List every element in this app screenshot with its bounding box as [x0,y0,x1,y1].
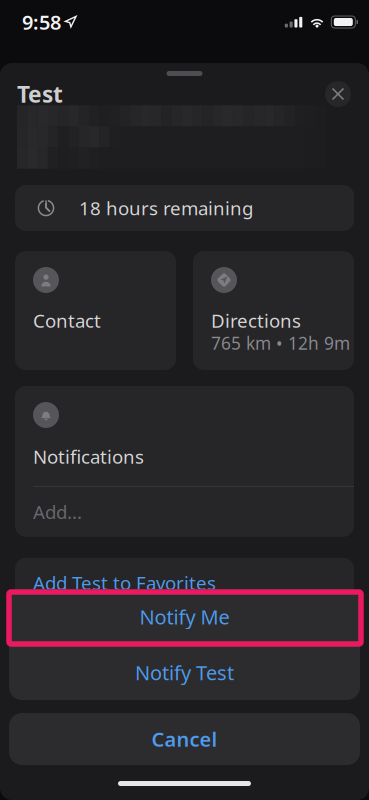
staticText: 765 km • 12h 9m [211,331,350,354]
staticText: Add... [33,499,82,524]
staticText: Cancel [151,726,217,752]
button[interactable]: Directions [193,251,354,370]
staticText: Directions [211,308,301,333]
button[interactable]: Notify Test [9,645,360,700]
staticText: Notifications [33,444,144,469]
staticText: Notify Me [139,603,229,630]
staticText: Contact [33,308,101,333]
button[interactable]: Contact [15,251,176,370]
staticText: 9:58 [22,9,61,35]
button[interactable]: Add Test to Favorites [15,558,354,608]
button[interactable]: Close [325,81,351,107]
staticText: Add Test to Favorites [33,570,216,595]
button[interactable]: Add... [15,487,354,537]
staticText: Notify Test [135,659,234,686]
staticText: 18 hours remaining [79,196,253,220]
button[interactable]: Notify Me [9,589,360,644]
button[interactable]: 18 hours remaining [15,185,354,231]
staticText: Test [17,79,63,109]
button[interactable]: Cancel [9,713,360,765]
